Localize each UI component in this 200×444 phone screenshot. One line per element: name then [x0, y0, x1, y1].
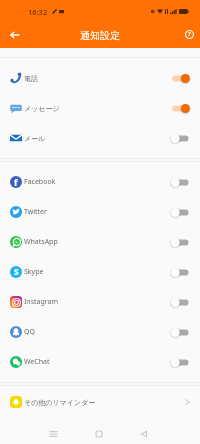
button[interactable]: [171, 176, 190, 189]
button[interactable]: WeChat: [0, 347, 200, 377]
staticText: その他のリマインダー: [24, 398, 96, 407]
staticText: Facebook: [24, 177, 56, 187]
staticText: S: [14, 266, 19, 278]
button[interactable]: その他のリマインダー: [0, 387, 200, 417]
button[interactable]: [171, 326, 190, 339]
staticText: f: [14, 176, 18, 188]
button[interactable]: Back: [4, 25, 24, 45]
staticText: WeChat: [24, 357, 50, 367]
button[interactable]: f: [0, 167, 200, 197]
staticText: QQ: [24, 327, 35, 337]
button[interactable]: [171, 206, 190, 219]
button[interactable]: [171, 296, 190, 309]
button[interactable]: [171, 356, 190, 369]
button[interactable]: [171, 102, 190, 115]
button[interactable]: [171, 132, 190, 145]
staticText: Twitter: [24, 207, 47, 217]
staticText: WhatsApp: [24, 237, 58, 247]
staticText: 16:32: [28, 7, 48, 17]
button[interactable]: [171, 72, 190, 85]
staticText: Instagram: [24, 297, 59, 307]
staticText: メール: [24, 134, 46, 143]
button[interactable]: Recent apps: [45, 426, 61, 442]
button[interactable]: Instagram: [0, 287, 200, 317]
button[interactable]: [171, 236, 190, 249]
button[interactable]: [171, 266, 190, 279]
staticText: メッセージ: [24, 104, 60, 113]
button[interactable]: Help: [180, 25, 198, 43]
button[interactable]: Back: [136, 426, 152, 442]
button[interactable]: Twitter: [0, 197, 200, 227]
button[interactable]: S: [0, 257, 200, 287]
button[interactable]: Home: [91, 426, 107, 442]
staticText: Skype: [24, 267, 44, 277]
button[interactable]: メール: [0, 123, 200, 153]
staticText: ?: [188, 30, 191, 38]
button[interactable]: QQ: [0, 317, 200, 347]
button[interactable]: メッセージ: [0, 93, 200, 123]
staticText: 通知設定: [80, 29, 120, 42]
button[interactable]: WhatsApp: [0, 227, 200, 257]
button[interactable]: 電話: [0, 63, 200, 93]
staticText: 電話: [24, 74, 38, 83]
